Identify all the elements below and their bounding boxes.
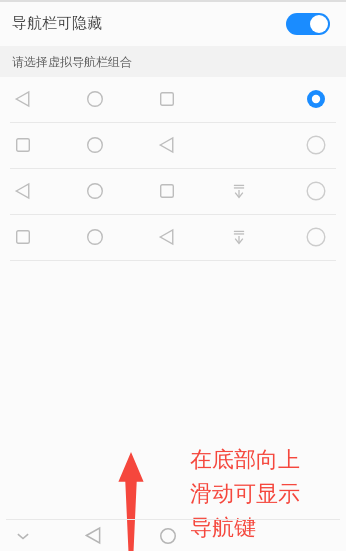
button[interactable] [0, 215, 346, 260]
button[interactable]: Home [153, 520, 183, 551]
button[interactable]: Navigation bar hideable toggle [286, 13, 330, 35]
staticText: 请选择虚拟导航栏组合 [12, 54, 132, 69]
button[interactable]: Back [78, 520, 108, 551]
button[interactable] [0, 77, 346, 122]
button[interactable]: Hide navigation bar [8, 520, 38, 551]
button[interactable]: 导航栏可隐藏 [0, 2, 346, 46]
staticText: 滑动可显示 [190, 480, 300, 508]
button[interactable] [0, 169, 346, 214]
staticText: 在底部向上 [190, 446, 300, 474]
staticText: 导航栏可隐藏 [12, 14, 102, 33]
button[interactable] [0, 123, 346, 168]
staticText: 导航键 [190, 514, 256, 542]
